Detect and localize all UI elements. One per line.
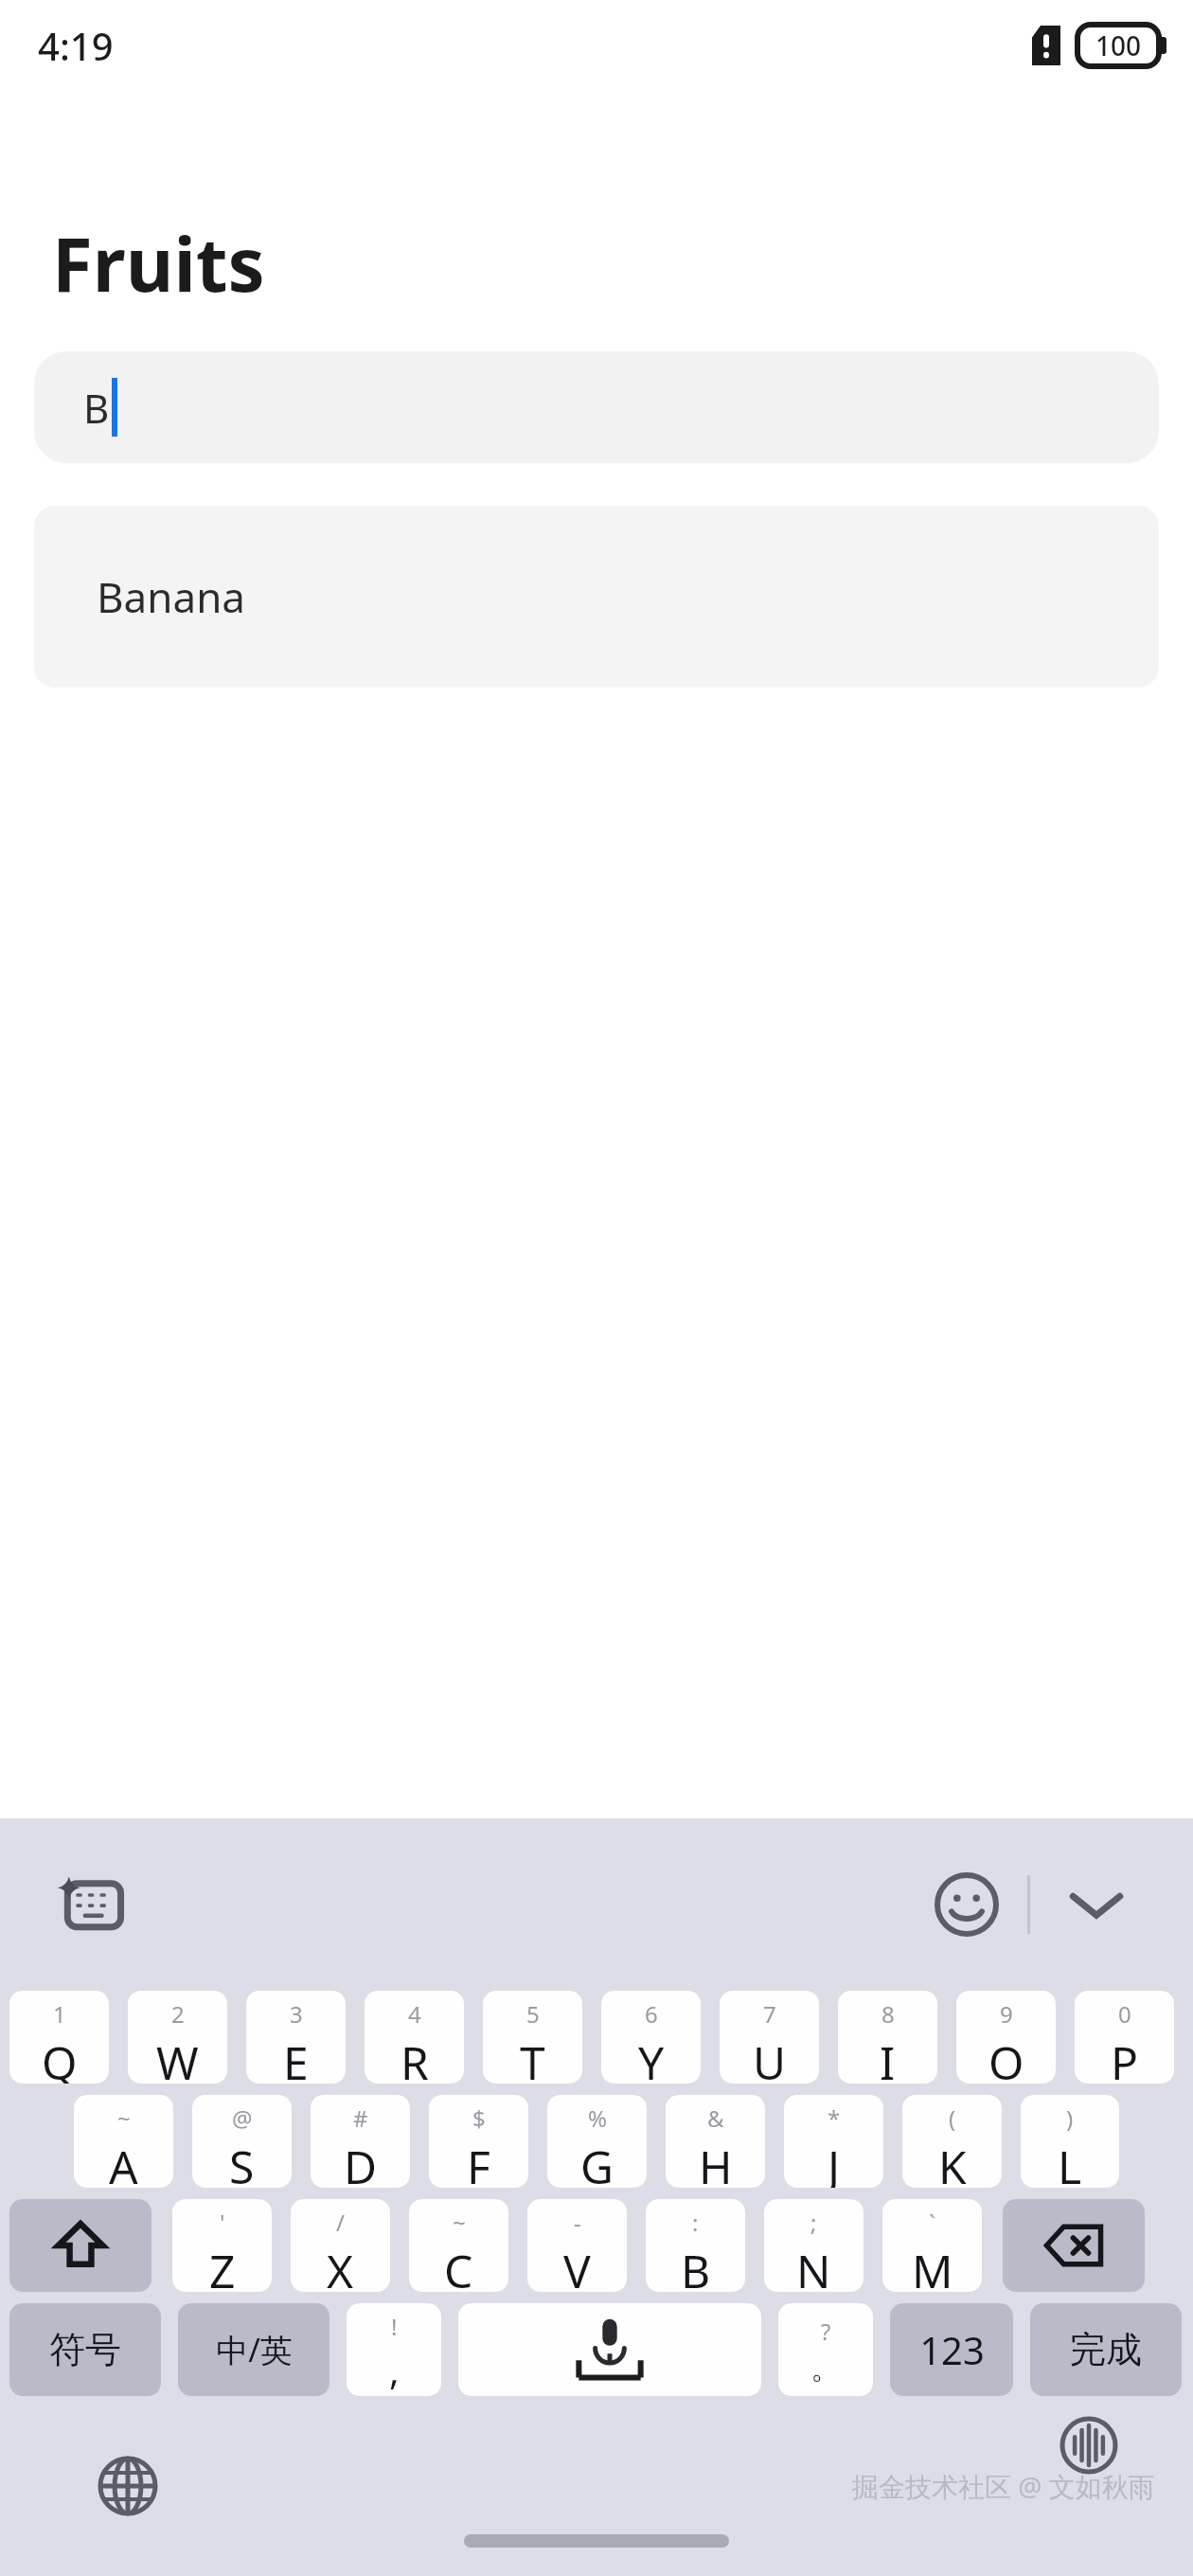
staticText: C: [444, 2240, 473, 2292]
staticText: Q: [42, 2031, 78, 2084]
staticText: 5: [526, 1998, 540, 2030]
button[interactable]: &: [666, 2095, 765, 2188]
staticText: X: [327, 2240, 354, 2292]
button[interactable]: `: [882, 2199, 982, 2292]
button[interactable]: 9: [956, 1991, 1056, 2084]
button[interactable]: @: [192, 2095, 292, 2188]
button[interactable]: Backspace: [1003, 2199, 1145, 2292]
button[interactable]: 8: [838, 1991, 937, 2084]
button[interactable]: Emoji: [919, 1857, 1014, 1952]
staticText: 4:19: [38, 20, 114, 71]
staticText: D: [344, 2136, 378, 2188]
staticText: 8: [881, 1998, 895, 2030]
staticText: ': [220, 2207, 225, 2238]
button[interactable]: 4: [365, 1991, 464, 2084]
button[interactable]: 3: [246, 1991, 346, 2084]
button[interactable]: 2: [128, 1991, 227, 2084]
button[interactable]: %: [547, 2095, 647, 2188]
button[interactable]: $: [429, 2095, 528, 2188]
button[interactable]: 完成: [1030, 2303, 1182, 2396]
button[interactable]: 符号: [9, 2303, 161, 2396]
staticText: 3: [290, 1998, 303, 2030]
staticText: N: [796, 2240, 831, 2292]
staticText: ;: [810, 2207, 817, 2238]
button[interactable]: Banana: [34, 506, 1159, 688]
staticText: 6: [645, 1998, 658, 2030]
button[interactable]: ;: [764, 2199, 864, 2292]
button[interactable]: 7: [720, 1991, 819, 2084]
staticText: 9: [1000, 1998, 1013, 2030]
staticText: U: [753, 2031, 787, 2084]
staticText: Fruits: [52, 213, 265, 313]
button[interactable]: Change language: [85, 2443, 170, 2529]
staticText: F: [467, 2136, 490, 2188]
staticText: 100: [1095, 27, 1142, 63]
staticText: S: [229, 2136, 255, 2188]
button[interactable]: 123: [890, 2303, 1013, 2396]
staticText: 1: [53, 1998, 66, 2030]
button[interactable]: /: [291, 2199, 390, 2292]
staticText: W: [156, 2031, 199, 2084]
button[interactable]: #: [311, 2095, 410, 2188]
staticText: R: [401, 2031, 429, 2084]
staticText: G: [580, 2136, 614, 2188]
staticText: A: [109, 2136, 138, 2188]
staticText: Y: [638, 2031, 665, 2084]
staticText: K: [938, 2136, 967, 2188]
button[interactable]: Space: [458, 2303, 761, 2396]
staticText: $: [472, 2102, 486, 2134]
staticText: 完成: [1070, 2327, 1142, 2372]
staticText: H: [699, 2136, 733, 2188]
button[interactable]: ': [172, 2199, 272, 2292]
button[interactable]: AI keyboard: [38, 1852, 142, 1957]
staticText: ): [1066, 2102, 1074, 2134]
button[interactable]: 5: [483, 1991, 582, 2084]
button[interactable]: 1: [9, 1991, 109, 2084]
button[interactable]: ?: [778, 2303, 873, 2396]
staticText: B: [83, 381, 110, 435]
staticText: #: [353, 2102, 368, 2134]
staticText: @: [232, 2102, 253, 2134]
staticText: 0: [1118, 1998, 1131, 2030]
staticText: L: [1058, 2136, 1082, 2188]
staticText: I: [880, 2031, 896, 2084]
staticText: ~: [117, 2102, 131, 2134]
staticText: Z: [209, 2240, 236, 2292]
staticText: 掘金技术社区 @ 文如秋雨: [852, 2468, 1155, 2504]
staticText: 符号: [49, 2327, 121, 2372]
button[interactable]: 6: [601, 1991, 701, 2084]
staticText: 4: [408, 1998, 421, 2030]
staticText: T: [520, 2031, 545, 2084]
button[interactable]: ~: [409, 2199, 508, 2292]
button[interactable]: Hide keyboard: [1049, 1857, 1144, 1952]
button[interactable]: *: [784, 2095, 883, 2188]
staticText: ?: [821, 2316, 831, 2347]
staticText: 2: [171, 1998, 185, 2030]
button[interactable]: B: [34, 351, 1159, 463]
staticText: -: [574, 2207, 581, 2238]
button[interactable]: Voice input: [1049, 2406, 1129, 2485]
button[interactable]: ): [1021, 2095, 1119, 2188]
button[interactable]: !: [347, 2303, 441, 2396]
button[interactable]: (: [902, 2095, 1002, 2188]
staticText: *: [828, 2102, 841, 2134]
staticText: %: [588, 2102, 607, 2134]
staticText: `: [929, 2207, 935, 2238]
button[interactable]: :: [646, 2199, 745, 2292]
staticText: B: [681, 2240, 711, 2292]
staticText: E: [283, 2031, 309, 2084]
staticText: /: [336, 2207, 345, 2238]
staticText: V: [563, 2240, 591, 2292]
staticText: P: [1111, 2031, 1139, 2084]
button[interactable]: 中/英: [178, 2303, 329, 2396]
staticText: 7: [763, 1998, 776, 2030]
staticText: O: [988, 2031, 1024, 2084]
staticText: 。: [810, 2349, 841, 2387]
staticText: &: [707, 2102, 724, 2134]
button[interactable]: ~: [74, 2095, 173, 2188]
button[interactable]: Shift: [9, 2199, 151, 2292]
staticText: (: [949, 2102, 956, 2134]
button[interactable]: -: [527, 2199, 627, 2292]
staticText: 中/英: [216, 2328, 293, 2371]
button[interactable]: 0: [1075, 1991, 1174, 2084]
